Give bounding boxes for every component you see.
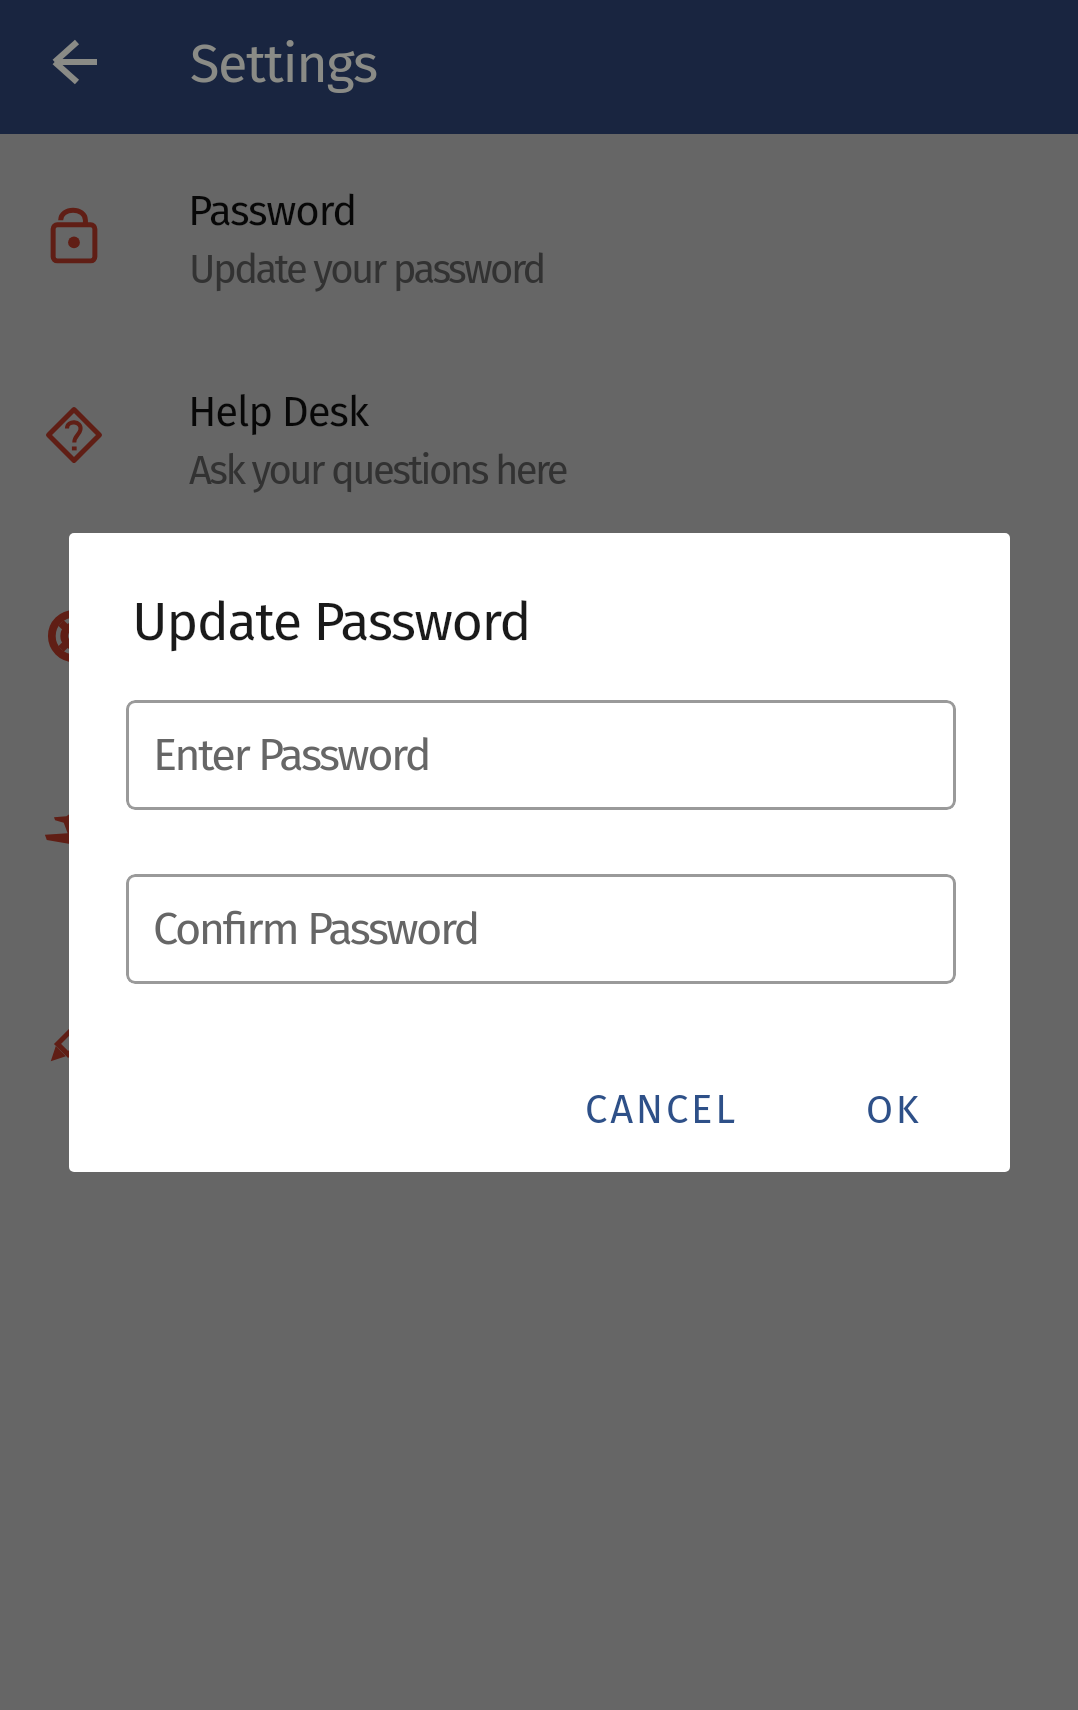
button[interactable]: OK [837, 1058, 951, 1162]
staticText: Ask your questions here [189, 447, 566, 495]
staticText: Confirm Password [153, 902, 479, 956]
button[interactable]: Support [0, 536, 1078, 737]
staticText: Update Password [132, 590, 530, 655]
staticText: Enable airplane mode [189, 849, 537, 897]
button[interactable]: Password [0, 134, 1078, 335]
staticText: Enter Password [153, 728, 430, 782]
staticText: Settings [190, 32, 377, 97]
staticText: Password [188, 186, 357, 236]
button[interactable]: Profile [0, 938, 1078, 1139]
button[interactable]: Airplane Mode [0, 737, 1078, 938]
button[interactable]: Back [32, 34, 98, 100]
button[interactable]: Help Desk [0, 335, 1078, 536]
staticText: Airplane Mode [188, 789, 449, 839]
button[interactable]: Enter Password [126, 700, 956, 810]
staticText: Help Desk [188, 387, 369, 437]
button[interactable]: Confirm Password [126, 874, 956, 984]
staticText: OK [866, 1087, 922, 1134]
button[interactable]: CANCEL [553, 1058, 769, 1162]
staticText: Update your password [189, 246, 544, 294]
staticText: CANCEL [585, 1086, 738, 1134]
staticText: Support [188, 588, 333, 638]
